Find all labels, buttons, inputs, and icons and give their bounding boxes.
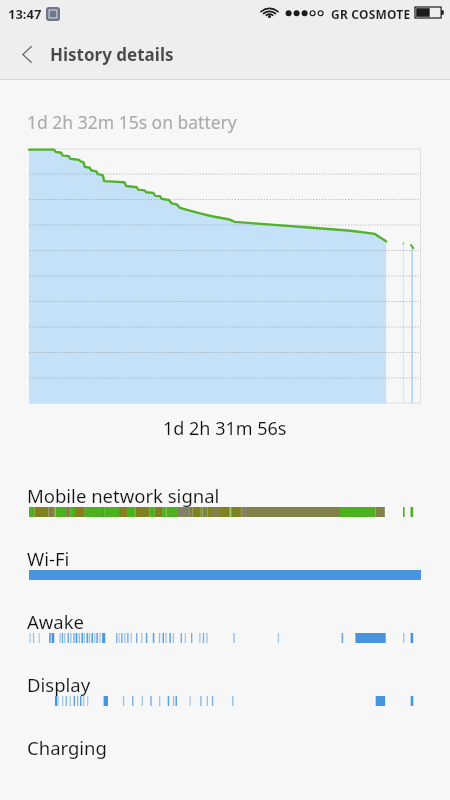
staticText: Charging: [27, 735, 107, 760]
staticText: GR COSMOTE: [331, 6, 411, 22]
staticText: Display: [27, 672, 91, 697]
staticText: 1d 2h 32m 15s on battery: [27, 110, 237, 134]
staticText: History details: [50, 43, 174, 66]
staticText: 1d 2h 31m 56s: [163, 416, 287, 441]
staticText: Awake: [27, 609, 85, 634]
button[interactable]: Back: [0, 28, 50, 80]
staticText: Mobile network signal: [27, 483, 220, 508]
staticText: Wi-Fi: [27, 546, 70, 571]
staticText: 13:47: [8, 5, 42, 23]
